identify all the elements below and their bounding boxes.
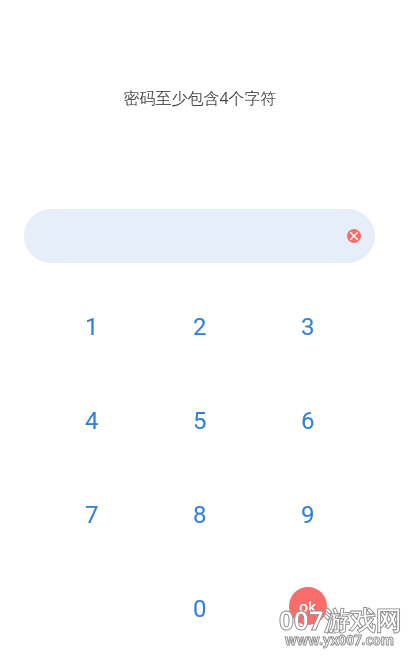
button[interactable]: 8	[146, 468, 254, 562]
button[interactable]: 4	[38, 374, 146, 468]
button[interactable]: 0	[146, 562, 254, 656]
staticText: www.yx007.com	[285, 631, 394, 649]
staticText: 6	[301, 407, 315, 435]
button[interactable]: ok	[289, 587, 327, 625]
button[interactable]: Clear text	[24, 209, 375, 263]
staticText: www.yx007.com	[285, 631, 394, 649]
staticText: 7	[85, 501, 99, 529]
staticText: 8	[193, 501, 207, 529]
button[interactable]: Clear text	[347, 229, 361, 243]
staticText: 4	[85, 407, 99, 435]
staticText: 1	[85, 313, 99, 341]
button[interactable]: 5	[146, 374, 254, 468]
staticText: 密码至少包含4个字符	[123, 87, 277, 109]
staticText: 2	[193, 313, 207, 341]
button[interactable]: 2	[146, 280, 254, 374]
staticText: 007游戏网	[279, 602, 402, 638]
staticText: 9	[301, 501, 315, 529]
staticText: 5	[193, 407, 207, 435]
button[interactable]: 3	[254, 280, 362, 374]
button[interactable]	[254, 562, 362, 656]
button[interactable]: 9	[254, 468, 362, 562]
button[interactable]: 6	[254, 374, 362, 468]
button[interactable]: 7	[38, 468, 146, 562]
staticText: 0	[193, 595, 207, 623]
staticText: 3	[301, 313, 315, 341]
button[interactable]: 1	[38, 280, 146, 374]
staticText: 007游戏网	[279, 602, 402, 638]
staticText: ok	[299, 596, 317, 616]
